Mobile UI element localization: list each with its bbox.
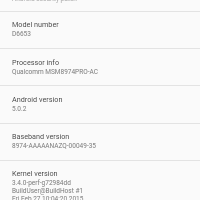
staticText: 8974-AAAAANAZQ-00049-35 — [12, 142, 96, 150]
staticText: Kernel version — [12, 169, 58, 177]
staticText: BuildUser@BuildHost #1 — [12, 187, 84, 195]
staticText: Qualcomm MSM8974PRO-AC — [12, 68, 98, 76]
staticText: Fri Feb 27 10:04:20 2015 — [12, 195, 84, 200]
staticText: Android version — [12, 95, 63, 103]
staticText: Processor info — [12, 58, 60, 66]
staticText: Baseband version — [12, 132, 70, 140]
button[interactable]: Baseband version — [0, 124, 200, 160]
button[interactable]: Processor info — [0, 49, 200, 85]
button[interactable]: Model number — [0, 12, 200, 48]
staticText: Model number — [12, 20, 59, 28]
staticText: D6653 — [12, 30, 31, 38]
staticText: 5.0.2 — [12, 105, 27, 113]
staticText: 3.4.0-perf-g72984dd — [12, 179, 71, 187]
button[interactable]: Android version — [0, 86, 200, 123]
button[interactable]: Kernel version — [0, 161, 200, 200]
staticText: Android security patch — [12, 0, 77, 3]
